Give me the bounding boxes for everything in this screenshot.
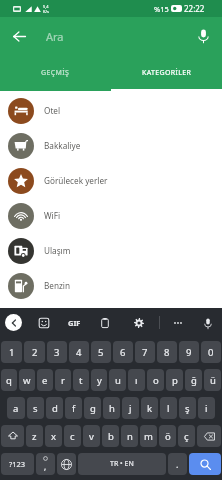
button[interactable]: s [27,397,44,419]
staticText: Benzin [44,280,71,291]
button[interactable]: j [122,397,139,419]
button[interactable]: 5 [91,341,111,363]
staticText: v [89,430,94,443]
button[interactable]: l [160,397,177,419]
button[interactable]: 6 [113,341,133,363]
button[interactable]: TR • EN [78,453,166,475]
button[interactable]: ö [159,425,176,447]
staticText: u [115,374,121,387]
button[interactable]: Search [189,453,221,475]
staticText: 0 [208,346,214,359]
button[interactable]: Settings [131,315,147,331]
button[interactable]: More options [170,315,186,331]
staticText: s [33,402,38,415]
staticText: 5 [98,346,104,359]
button[interactable]: g [84,397,101,419]
button[interactable]: Otel [0,93,222,128]
button[interactable]: Ara [38,17,184,55]
button[interactable]: Ulaşım [0,233,222,268]
staticText: g [90,402,96,415]
button[interactable]: KATEGORİLER [111,55,222,91]
staticText: m [144,430,153,443]
staticText: %15 [154,4,169,14]
button[interactable]: z [26,425,43,447]
staticText: GIF [68,318,81,328]
button[interactable]: 3 [47,341,67,363]
staticText: Görülecek yerler [44,175,108,186]
button[interactable]: f [65,397,82,419]
button[interactable]: Clipboard [97,315,113,331]
button[interactable]: w [19,369,35,391]
button[interactable]: Change language [57,453,76,475]
button[interactable]: Benzin [0,268,222,303]
staticText: l [167,402,170,415]
button[interactable]: o [147,369,164,391]
staticText: 7 [142,346,148,359]
button[interactable]: ş [179,397,196,419]
button[interactable]: 7 [135,341,155,363]
button[interactable]: Expand toolbar [5,314,22,331]
button[interactable]: 0 [201,341,221,363]
staticText: f [72,402,76,415]
button[interactable]: 1 [1,341,22,363]
button[interactable]: Shift [1,425,24,447]
button[interactable]: Backspace [197,425,221,447]
staticText: p [172,374,178,387]
button[interactable]: Voice search [184,17,222,55]
button[interactable]: e [37,369,53,391]
staticText: ç [184,430,189,443]
button[interactable]: WiFi [0,198,222,233]
staticText: , [44,461,47,472]
button[interactable]: h [103,397,120,419]
button[interactable]: 9 [179,341,199,363]
staticText: 22:22 [184,3,205,14]
button[interactable]: p [166,369,183,391]
button[interactable]: m [140,425,157,447]
staticText: 9 [186,346,192,359]
staticText: y [97,374,102,387]
staticText: n [127,430,133,443]
staticText: o [153,374,159,387]
staticText: c [70,430,75,443]
staticText: t [79,374,83,387]
button[interactable]: Görülecek yerler [0,163,222,198]
button[interactable]: c [64,425,81,447]
button[interactable]: v [83,425,100,447]
button[interactable]: 4 [69,341,89,363]
button[interactable]: a [7,397,25,419]
staticText: 8 [164,346,170,359]
button[interactable]: Back [0,17,38,55]
button[interactable]: Comma and emoji [36,453,55,475]
button[interactable]: Stickers [36,315,52,331]
button[interactable]: ü [204,369,221,391]
staticText: ü [210,374,216,387]
button[interactable]: Voice input [200,315,216,331]
button[interactable]: x [45,425,62,447]
button[interactable]: 2 [24,341,45,363]
button[interactable]: t [73,369,89,391]
button[interactable]: Period [168,453,187,475]
staticText: ı [135,374,138,387]
staticText: Bakkaliye [44,140,81,151]
button[interactable]: ç [178,425,195,447]
button[interactable]: 8 [157,341,177,363]
button[interactable]: GIF [64,312,84,334]
button[interactable]: b [102,425,119,447]
staticText: q [6,374,12,387]
button[interactable]: y [91,369,107,391]
button[interactable]: ğ [185,369,202,391]
button[interactable]: n [121,425,138,447]
button[interactable]: d [46,397,63,419]
button[interactable]: r [55,369,71,391]
staticText: 1 [9,346,15,359]
button[interactable]: ı [128,369,145,391]
button[interactable]: u [109,369,126,391]
button[interactable]: k [141,397,158,419]
button[interactable]: ?123 [1,453,34,475]
button[interactable]: i [198,397,215,419]
button[interactable]: Bakkaliye [0,128,222,163]
button[interactable]: q [1,369,17,391]
button[interactable]: GEÇMİŞ [0,55,111,91]
staticText: 2 [32,346,38,359]
staticText: h [109,402,115,415]
